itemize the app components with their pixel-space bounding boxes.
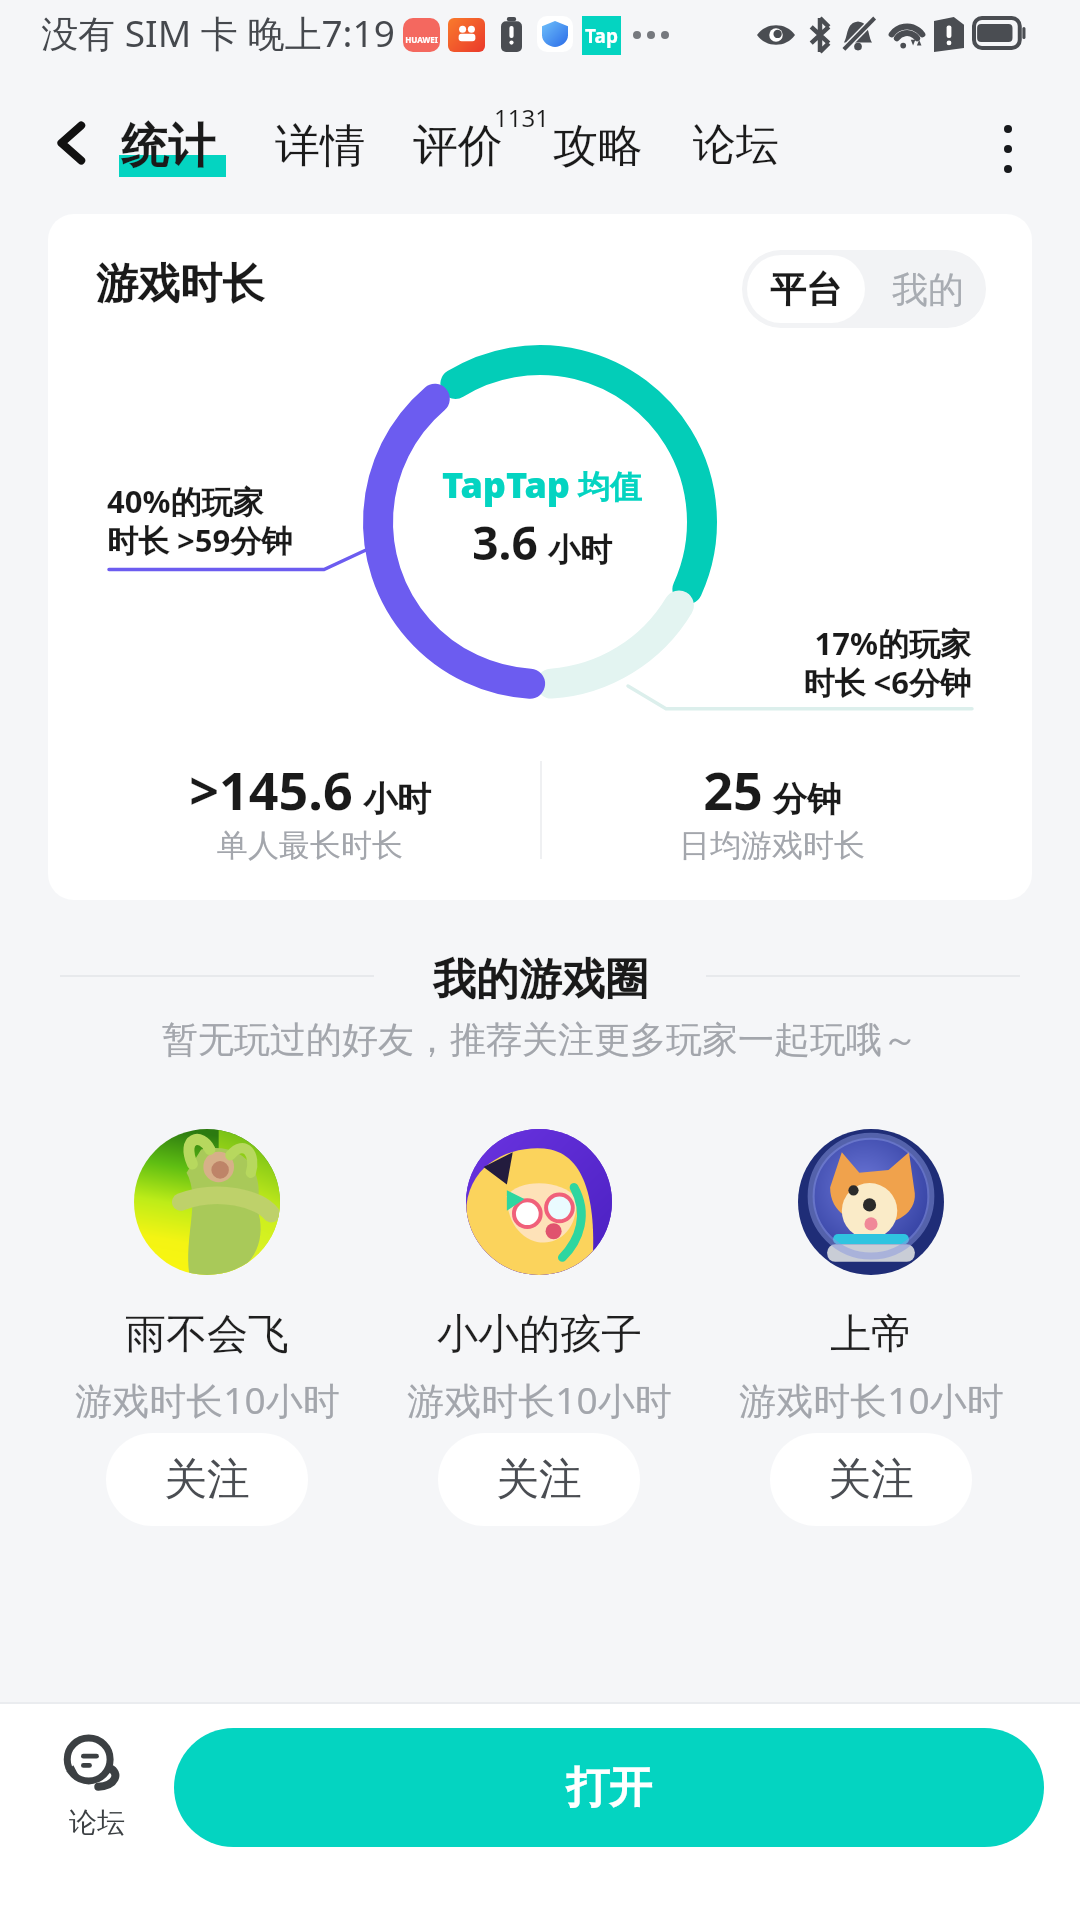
staticText: 雨不会飞: [125, 1309, 289, 1361]
staticText: 1131: [494, 101, 549, 134]
staticText: 游戏时长: [96, 258, 264, 311]
staticText: 40%的玩家 时长 >59分钟: [107, 480, 293, 561]
button[interactable]: 论坛: [35, 1730, 159, 1848]
staticText: 论坛: [693, 118, 779, 172]
staticText: 统计: [121, 117, 215, 176]
button[interactable]: 打开: [174, 1728, 1044, 1847]
button[interactable]: 攻略: [553, 108, 643, 175]
staticText: 游戏时长10小时: [75, 1374, 340, 1425]
button[interactable]: 关注: [438, 1433, 640, 1526]
staticText: 暂无玩过的好友，推荐关注更多玩家一起玩哦～: [162, 1017, 918, 1062]
staticText: 游戏时长10小时: [407, 1374, 672, 1425]
button[interactable]: More options: [977, 118, 1039, 180]
staticText: 游戏时长10小时: [739, 1374, 1004, 1425]
staticText: 日均游戏时长: [679, 826, 865, 865]
staticText: 我的游戏圈: [433, 953, 648, 1007]
staticText: 17%的玩家 时长 <6分钟: [803, 622, 971, 703]
button[interactable]: 关注: [106, 1433, 308, 1526]
staticText: 详情: [275, 118, 365, 175]
button[interactable]: Back: [42, 113, 102, 173]
button[interactable]: 关注: [770, 1433, 972, 1526]
staticText: 分钟: [773, 778, 841, 821]
button[interactable]: 评价: [413, 108, 503, 175]
button[interactable]: 详情: [275, 108, 365, 175]
staticText: 关注: [496, 1453, 582, 1507]
staticText: Tap: [585, 23, 618, 49]
staticText: 我的: [892, 267, 964, 312]
button[interactable]: 平台: [747, 255, 865, 323]
staticText: TapTap: [442, 460, 570, 509]
staticText: 平台: [770, 267, 842, 312]
staticText: 单人最长时长: [217, 826, 403, 865]
staticText: 25: [703, 754, 763, 825]
button[interactable]: 论坛: [693, 108, 779, 172]
staticText: 关注: [828, 1453, 914, 1507]
staticText: HUAWEI: [405, 34, 438, 45]
button[interactable]: 统计: [121, 107, 215, 176]
staticText: 3.6: [472, 511, 538, 574]
staticText: 论坛: [69, 1805, 125, 1840]
staticText: 打开: [566, 1761, 652, 1815]
staticText: 评价: [413, 118, 503, 175]
staticText: 关注: [164, 1453, 250, 1507]
staticText: 小时: [363, 778, 431, 821]
staticText: 上帝: [830, 1309, 912, 1361]
staticText: 攻略: [553, 118, 643, 175]
staticText: 小时: [548, 530, 612, 570]
staticText: 没有 SIM 卡 晚上7:19: [41, 7, 395, 58]
button[interactable]: 我的: [870, 255, 986, 323]
staticText: >145.6: [189, 754, 353, 825]
staticText: 小小的孩子: [437, 1309, 642, 1361]
staticText: 均值: [578, 467, 642, 507]
